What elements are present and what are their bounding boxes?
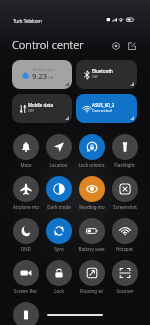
- button[interactable]: Dark mode: [42, 176, 75, 210]
- button[interactable]: Sync: [42, 218, 75, 252]
- button[interactable]: Brightness: [9, 302, 42, 325]
- button[interactable]: Hotspot: [108, 218, 141, 252]
- button[interactable]: Screen Rec: [9, 260, 42, 294]
- staticText: Lock orienta: [78, 162, 105, 168]
- button[interactable]: Screenshot: [108, 176, 141, 210]
- staticText: Mobile data: [28, 102, 53, 108]
- button[interactable]: Edit: [124, 38, 140, 54]
- button[interactable]: DND: [9, 218, 42, 252]
- staticText: Flashlight: [114, 162, 135, 168]
- staticText: DND: [21, 246, 31, 252]
- staticText: Screen Rec: [14, 288, 37, 294]
- staticText: GB: [48, 75, 54, 80]
- button[interactable]: Mobile data: [12, 60, 72, 89]
- button[interactable]: Reading mo: [75, 176, 108, 210]
- button[interactable]: Bluetooth: [76, 60, 137, 89]
- button[interactable]: Floating wi: [75, 260, 108, 294]
- button[interactable]: Scanner: [108, 260, 141, 294]
- button[interactable]: Flashlight: [108, 134, 141, 168]
- staticText: Control center: [12, 37, 84, 52]
- button[interactable]: Settings: [108, 38, 124, 54]
- staticText: Battery save: [78, 246, 105, 252]
- staticText: Screenshot: [113, 204, 137, 210]
- staticText: Mute: [20, 162, 32, 168]
- staticText: Hotspot: [116, 246, 133, 252]
- staticText: Reading mo: [79, 204, 105, 210]
- staticText: Sync: [54, 246, 64, 252]
- staticText: Airplane mo: [13, 204, 39, 210]
- staticText: Location: [49, 162, 68, 168]
- staticText: Connected: [92, 108, 112, 113]
- button[interactable]: Lock orienta: [75, 134, 108, 168]
- staticText: Lock: [54, 288, 64, 294]
- staticText: 9.23: [32, 71, 48, 81]
- staticText: Off: [92, 74, 98, 79]
- button[interactable]: Lock: [42, 260, 75, 294]
- button[interactable]: Battery save: [75, 218, 108, 252]
- button[interactable]: Mobile data: [12, 94, 72, 123]
- staticText: Scanner: [116, 288, 134, 294]
- button[interactable]: ASUS_60_2: [76, 94, 137, 123]
- staticText: Mobile data: [33, 67, 55, 72]
- button[interactable]: Airplane mo: [9, 176, 42, 210]
- button[interactable]: Mute: [9, 134, 42, 168]
- staticText: Dark mode: [47, 204, 71, 210]
- staticText: Floating wi: [80, 288, 103, 294]
- staticText: Off: [28, 108, 34, 113]
- staticText: Turk Telekom: [13, 18, 42, 24]
- button[interactable]: Location: [42, 134, 75, 168]
- staticText: Bluetooth: [92, 68, 113, 74]
- staticText: ASUS_60_2: [92, 102, 115, 108]
